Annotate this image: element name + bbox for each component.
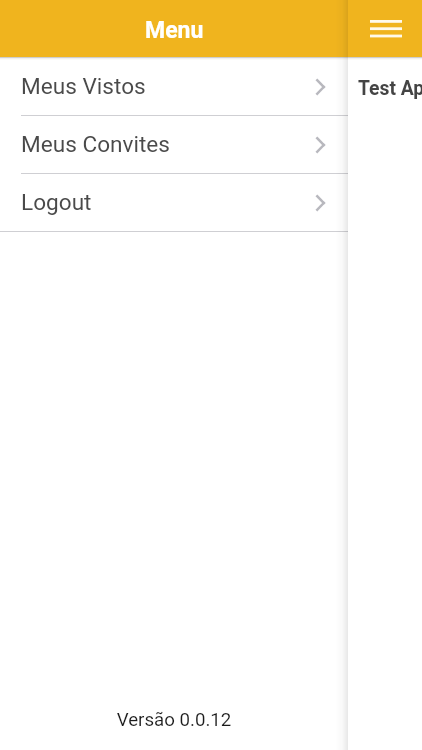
staticText: Meus Convites <box>21 131 170 157</box>
staticText: Meus Vistos <box>21 73 146 99</box>
staticText: Menu <box>145 17 204 44</box>
button[interactable]: Meus Convites <box>0 116 348 174</box>
staticText: Versão 0.0.12 <box>0 709 348 731</box>
staticText: Test App <box>358 77 422 100</box>
staticText: Logout <box>21 189 92 215</box>
button[interactable]: Open navigation menu <box>363 5 409 53</box>
button[interactable]: Logout <box>0 174 348 232</box>
button[interactable]: Meus Vistos <box>0 58 348 116</box>
